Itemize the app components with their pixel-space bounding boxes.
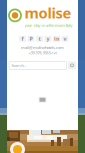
- staticText: v: [63, 35, 66, 42]
- button[interactable]: Facebook: [19, 36, 26, 42]
- button[interactable]: Vimeo: [61, 36, 68, 42]
- staticText: f: [21, 35, 23, 42]
- button[interactable]: YouTube: [44, 36, 51, 42]
- staticText: molise: [24, 3, 71, 22]
- staticText: your stay in unforeseen Italy: [24, 22, 72, 28]
- staticText: in: [54, 35, 59, 42]
- staticText: mail@molisehotels.com: [21, 45, 64, 50]
- button[interactable]: Pinterest: [27, 36, 34, 42]
- staticText: y: [46, 35, 49, 42]
- staticText: t: [38, 35, 40, 42]
- staticText: P: [29, 35, 32, 42]
- button[interactable]: Twitter: [36, 36, 43, 42]
- button[interactable]: LinkedIn: [53, 36, 60, 42]
- staticText: +39.376.3563.rvt: [28, 50, 56, 55]
- staticText: Search...: [11, 63, 26, 68]
- button[interactable]: Search: [68, 61, 76, 69]
